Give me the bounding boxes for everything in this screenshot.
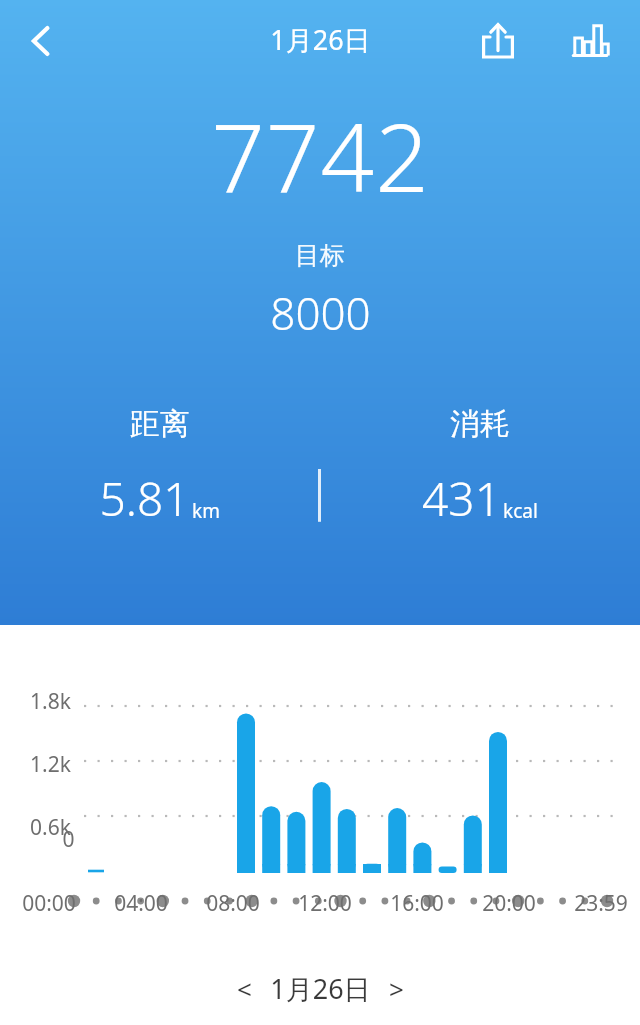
staticText: 20:00 [482,889,536,918]
staticText: 1.8k [30,687,71,716]
button[interactable]: Share [468,11,528,71]
staticText: 0.6k [30,813,71,842]
staticText: 04:00 [114,889,168,918]
button[interactable]: 消耗 [320,405,640,530]
button[interactable]: Back [10,9,74,73]
button[interactable]: < [237,970,404,1007]
staticText: 431 [422,467,501,530]
staticText: 目标 [295,240,345,271]
staticText: km [192,498,220,524]
staticText: 距离 [130,405,190,443]
staticText: 7742 [211,92,430,220]
staticText: 1月26日 [270,21,371,58]
staticText: 消耗 [450,405,510,443]
staticText: 23:59 [574,889,628,918]
staticText: 5.81 [99,467,190,530]
staticText: < [237,971,252,1006]
staticText: 8000 [270,283,371,343]
staticText: 12:00 [298,889,352,918]
button[interactable]: 距离 [0,405,319,530]
staticText: 1月26日 [270,970,371,1007]
staticText: 08:00 [206,889,260,918]
staticText: 0 [62,825,75,854]
button[interactable]: Statistics [560,11,620,71]
staticText: > [389,971,404,1006]
staticText: 1.2k [30,750,71,779]
staticText: kcal [503,498,538,524]
staticText: 00:00 [22,889,76,918]
staticText: 16:00 [390,889,444,918]
